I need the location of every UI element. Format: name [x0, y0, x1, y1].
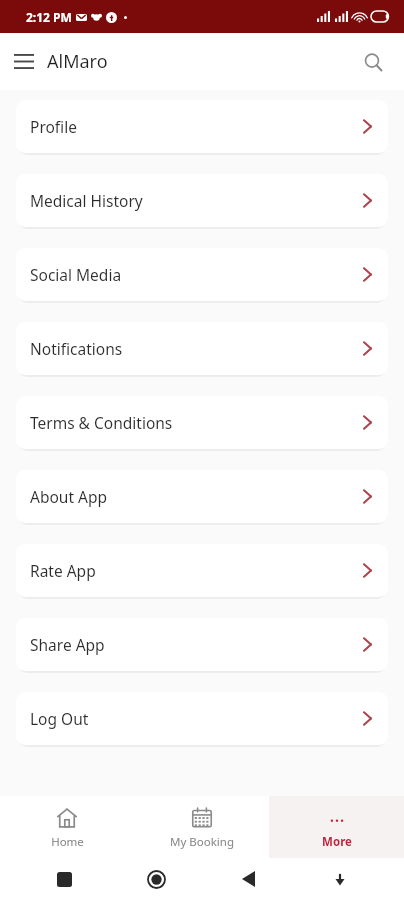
staticText: My Booking: [170, 834, 234, 850]
button[interactable]: Log Out: [16, 692, 388, 745]
staticText: AlMaro: [47, 49, 108, 74]
staticText: More: [322, 834, 352, 850]
staticText: Rate App: [30, 560, 363, 581]
button[interactable]: Rate App: [16, 544, 388, 597]
staticText: Profile: [30, 116, 363, 137]
button[interactable]: Notifications: [16, 322, 388, 375]
button[interactable]: Open navigation menu: [0, 41, 114, 82]
button[interactable]: Hide keyboard: [294, 871, 386, 887]
button[interactable]: About App: [16, 470, 388, 523]
staticText: 2:12 PM: [26, 9, 72, 25]
other: Open navigation menu: [14, 54, 34, 69]
staticText: Notifications: [30, 338, 363, 359]
button[interactable]: Home: [110, 870, 202, 889]
button[interactable]: Back: [202, 871, 294, 887]
button[interactable]: Share App: [16, 618, 388, 671]
staticText: Social Media: [30, 264, 363, 285]
button[interactable]: Recent apps: [18, 872, 110, 887]
button[interactable]: Medical History: [16, 174, 388, 227]
button[interactable]: Social Media: [16, 248, 388, 301]
staticText: Medical History: [30, 190, 363, 211]
button[interactable]: Profile: [16, 100, 388, 153]
button[interactable]: Search: [352, 41, 394, 83]
staticText: Terms & Conditions: [30, 412, 363, 433]
staticText: Share App: [30, 634, 363, 655]
button[interactable]: Home: [0, 796, 134, 858]
button[interactable]: More: [269, 796, 404, 858]
button[interactable]: Terms & Conditions: [16, 396, 388, 449]
button[interactable]: My Booking: [134, 796, 269, 858]
staticText: Log Out: [30, 708, 363, 729]
staticText: About App: [30, 486, 363, 507]
staticText: Home: [51, 834, 84, 850]
